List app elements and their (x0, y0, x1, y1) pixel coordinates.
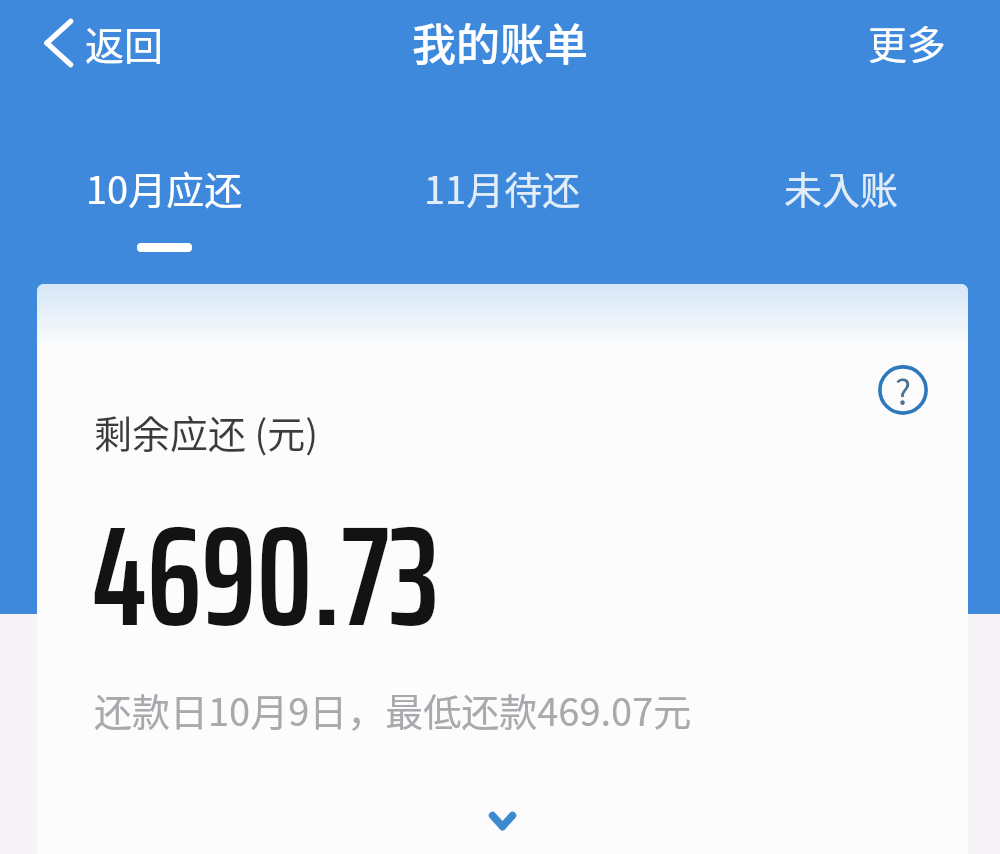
button[interactable]: 返回 (34, 4, 174, 82)
staticText: 11月待还 (424, 160, 581, 215)
staticText: 未入账 (784, 160, 899, 215)
button[interactable]: 11月待还 (392, 160, 612, 272)
button[interactable]: 未入账 (731, 160, 951, 272)
staticText: 还款日10月9日，最低还款469.07元 (94, 682, 692, 737)
button[interactable]: 更多 (860, 6, 955, 78)
button[interactable]: 帮助说明 (878, 365, 928, 415)
staticText: 返回 (85, 15, 164, 71)
button[interactable]: 展开更多 (474, 793, 530, 849)
staticText: 我的账单 (412, 10, 588, 74)
staticText: ? (895, 366, 912, 415)
staticText: 4690.73 (92, 466, 440, 686)
staticText: 更多 (868, 14, 947, 70)
button[interactable]: 10月应还 (54, 160, 274, 272)
staticText: 剩余应还 (元) (94, 404, 319, 459)
staticText: 10月应还 (86, 160, 243, 215)
